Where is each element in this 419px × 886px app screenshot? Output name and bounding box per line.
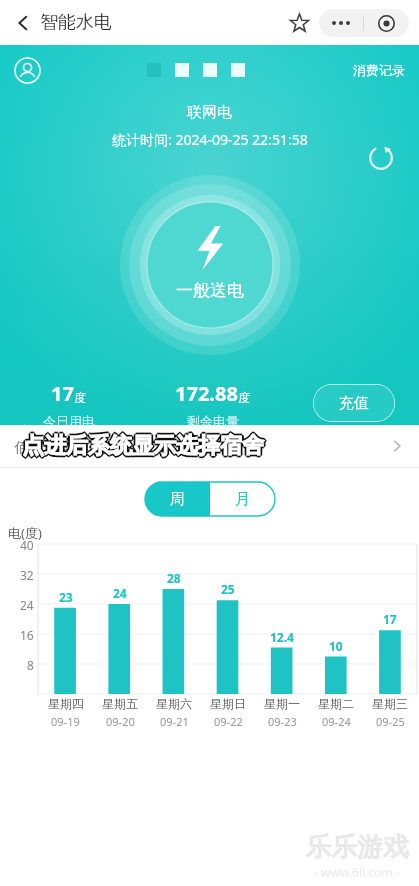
staticText: 点进后系统显示选择宿舍 bbox=[22, 432, 264, 460]
staticText: 消费记录 bbox=[353, 62, 405, 78]
staticText: 8 bbox=[27, 657, 34, 673]
staticText: 09-20 bbox=[106, 714, 135, 729]
staticText: 点进后系统显示选择宿舍 bbox=[23, 431, 265, 459]
staticText: - www.6ll.com - bbox=[314, 864, 400, 880]
button[interactable]: Refresh bbox=[363, 140, 399, 176]
staticText: 09-25 bbox=[376, 714, 405, 729]
staticText: 点进后系统显示选择宿舍 bbox=[23, 433, 265, 461]
button[interactable]: More options bbox=[319, 9, 363, 37]
button[interactable]: 月 bbox=[210, 482, 275, 516]
staticText: 星期四 bbox=[48, 696, 84, 711]
staticText: 星期二 bbox=[318, 696, 354, 711]
button[interactable]: 充值 bbox=[313, 384, 395, 422]
staticText: 点进后系统显示选择宿舍 bbox=[22, 430, 264, 458]
staticText: 一般送电 bbox=[176, 280, 244, 301]
staticText: 09-23 bbox=[268, 714, 297, 729]
button[interactable]: 佰乐云-电表-明细 bbox=[0, 425, 419, 467]
staticText: 点进后系统显示选择宿舍 bbox=[22, 434, 264, 462]
staticText: 12.4 bbox=[270, 629, 294, 645]
staticText: 星期六 bbox=[156, 696, 192, 711]
staticText: 智能水电 bbox=[40, 11, 112, 34]
button[interactable]: 17 bbox=[0, 380, 137, 425]
staticText: 17 bbox=[383, 611, 397, 627]
staticText: 充值 bbox=[339, 394, 369, 413]
staticText: 点进后系统显示选择宿舍 bbox=[20, 432, 262, 460]
staticText: 点进后系统显示选择宿舍 bbox=[21, 431, 263, 459]
staticText: 32 bbox=[20, 567, 34, 583]
button[interactable]: 172.88 bbox=[137, 380, 288, 425]
staticText: 度 bbox=[238, 390, 250, 405]
staticText: 周 bbox=[170, 490, 185, 509]
staticText: 度 bbox=[74, 390, 86, 405]
button[interactable]: 消费记录 bbox=[347, 56, 411, 84]
staticText: 电(度) bbox=[8, 524, 42, 542]
button[interactable]: Favorite bbox=[279, 3, 319, 43]
staticText: 星期日 bbox=[210, 696, 246, 711]
staticText: 月 bbox=[235, 490, 250, 509]
staticText: 09-22 bbox=[214, 714, 243, 729]
staticText: 09-19 bbox=[51, 714, 80, 729]
staticText: 乐乐游戏 bbox=[305, 831, 409, 864]
staticText: 佰乐云-电表-明细 bbox=[14, 437, 122, 456]
button[interactable]: Profile bbox=[8, 51, 46, 89]
staticText: 25 bbox=[221, 581, 235, 597]
staticText: 24 bbox=[113, 585, 127, 601]
staticText: 16 bbox=[20, 627, 34, 643]
staticText: 172.88 bbox=[175, 380, 238, 407]
button[interactable]: Close bbox=[364, 9, 409, 37]
staticText: 23 bbox=[59, 589, 73, 605]
staticText: 点进后系统显示选择宿舍 bbox=[21, 433, 263, 461]
staticText: 星期三 bbox=[372, 696, 408, 711]
staticText: 28 bbox=[167, 570, 181, 586]
staticText: 统计时间: 2024-09-25 22:51:58 bbox=[112, 130, 308, 149]
button[interactable]: Power status bbox=[120, 175, 300, 355]
staticText: 联网电 bbox=[187, 103, 232, 122]
staticText: 星期五 bbox=[102, 696, 138, 711]
staticText: 星期一 bbox=[264, 696, 300, 711]
staticText: 40 bbox=[20, 537, 34, 553]
staticText: 10 bbox=[329, 638, 343, 654]
staticText: 今日用电 bbox=[43, 413, 95, 425]
staticText: 09-24 bbox=[322, 714, 351, 729]
staticText: 09-21 bbox=[160, 714, 189, 729]
staticText: 24 bbox=[20, 597, 34, 613]
staticText: 点进后系统显示选择宿舍 bbox=[24, 432, 266, 460]
button[interactable]: Back bbox=[6, 6, 40, 40]
staticText: 剩余电量 bbox=[187, 413, 239, 425]
staticText: 17 bbox=[51, 380, 74, 407]
button[interactable]: 周 bbox=[145, 482, 210, 516]
